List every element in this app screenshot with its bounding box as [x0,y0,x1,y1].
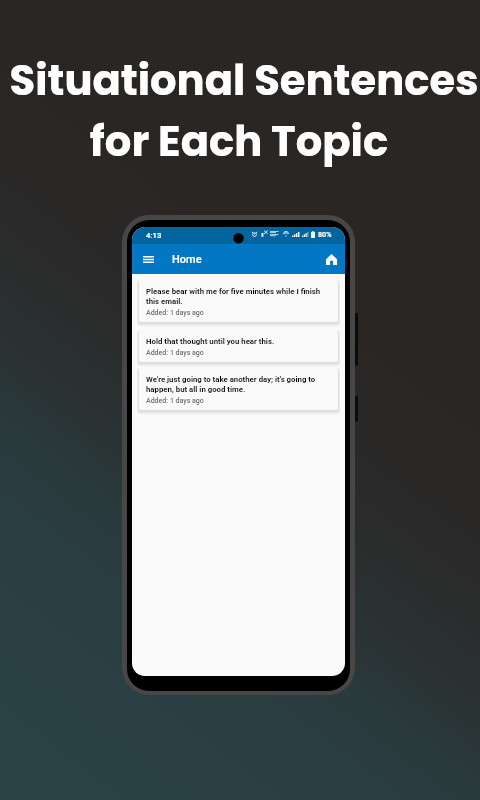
staticText: Please bear with me for five minutes whi… [146,287,331,306]
button[interactable]: We're just going to take another day; it… [139,368,338,410]
staticText: Home [172,253,202,266]
button[interactable]: Open navigation menu [138,249,158,269]
staticText: Situational Sentences [4,51,480,109]
staticText: Added: 1 days ago [146,397,204,405]
button[interactable]: Please bear with me for five minutes whi… [139,280,338,322]
staticText: 80% [318,230,332,238]
staticText: Added: 1 days ago [146,349,204,357]
staticText: Added: 1 days ago [146,309,204,317]
staticText: for Each Topic [0,112,479,170]
staticText: We're just going to take another day; it… [146,375,331,394]
button[interactable]: Hold that thought until you hear this. [139,330,338,362]
button[interactable]: Home [321,249,341,269]
staticText: Hold that thought until you hear this. [146,337,275,346]
staticText: 4:13 [146,231,162,240]
